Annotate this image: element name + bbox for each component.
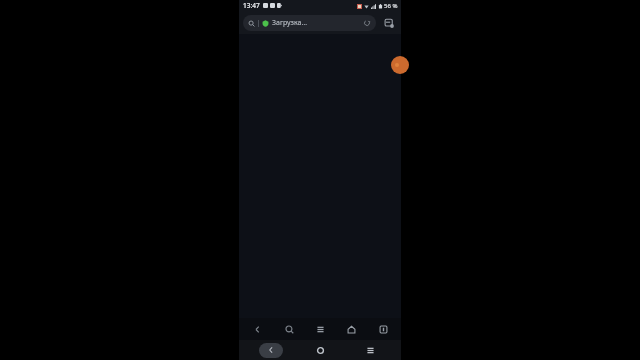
button[interactable]: Загрузка… xyxy=(243,15,376,31)
button[interactable]: Home xyxy=(338,318,364,340)
staticText: 56 % xyxy=(384,2,398,10)
button[interactable]: Tabs xyxy=(381,15,397,31)
staticText: Загрузка… xyxy=(272,18,308,28)
button[interactable]: Back xyxy=(253,341,289,359)
button[interactable]: Back xyxy=(244,318,270,340)
button[interactable]: Search xyxy=(276,318,302,340)
button[interactable]: Recent apps xyxy=(352,341,388,359)
button[interactable]: Tab count xyxy=(370,318,396,340)
button[interactable]: Floating bubble xyxy=(391,56,409,74)
staticText: 13:47 xyxy=(243,1,260,10)
button[interactable]: Menu xyxy=(307,318,333,340)
button[interactable]: Home xyxy=(302,341,338,359)
